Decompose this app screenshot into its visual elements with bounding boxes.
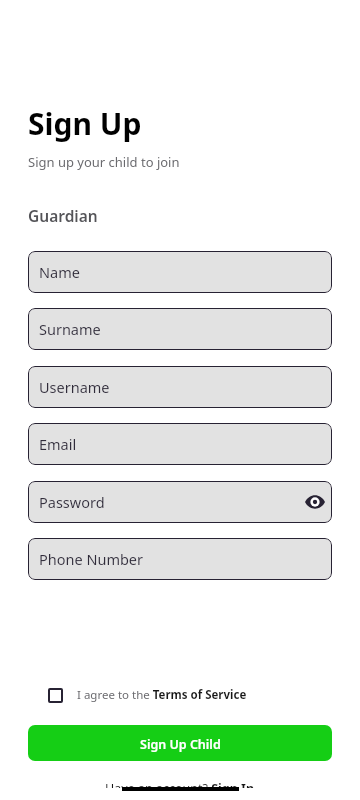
staticText: Password (39, 492, 105, 512)
button[interactable]: I agree to the Terms of Service (48, 685, 247, 705)
button[interactable]: Show password (300, 487, 330, 517)
button[interactable]: Name (28, 251, 332, 293)
staticText: Name (39, 262, 80, 282)
staticText: Sign Up Child (140, 736, 221, 753)
button[interactable]: Password (28, 481, 332, 523)
staticText: Surname (39, 319, 101, 339)
staticText: Email (39, 434, 77, 454)
button[interactable]: Username (28, 366, 332, 408)
staticText: I agree to the Terms of Service (77, 687, 247, 703)
staticText: Have an account? Sign In (105, 783, 255, 788)
staticText: Guardian (28, 205, 98, 226)
staticText: Sign Up (28, 103, 142, 144)
button[interactable]: Surname (28, 308, 332, 350)
staticText: Phone Number (39, 549, 144, 569)
button[interactable]: Have an account? Sign In (0, 783, 360, 800)
button[interactable]: Sign Up Child (28, 725, 332, 761)
staticText: Sign up your child to join (28, 153, 180, 171)
staticText: Username (39, 377, 110, 397)
button[interactable]: Phone Number (28, 538, 332, 580)
button[interactable]: Email (28, 423, 332, 465)
